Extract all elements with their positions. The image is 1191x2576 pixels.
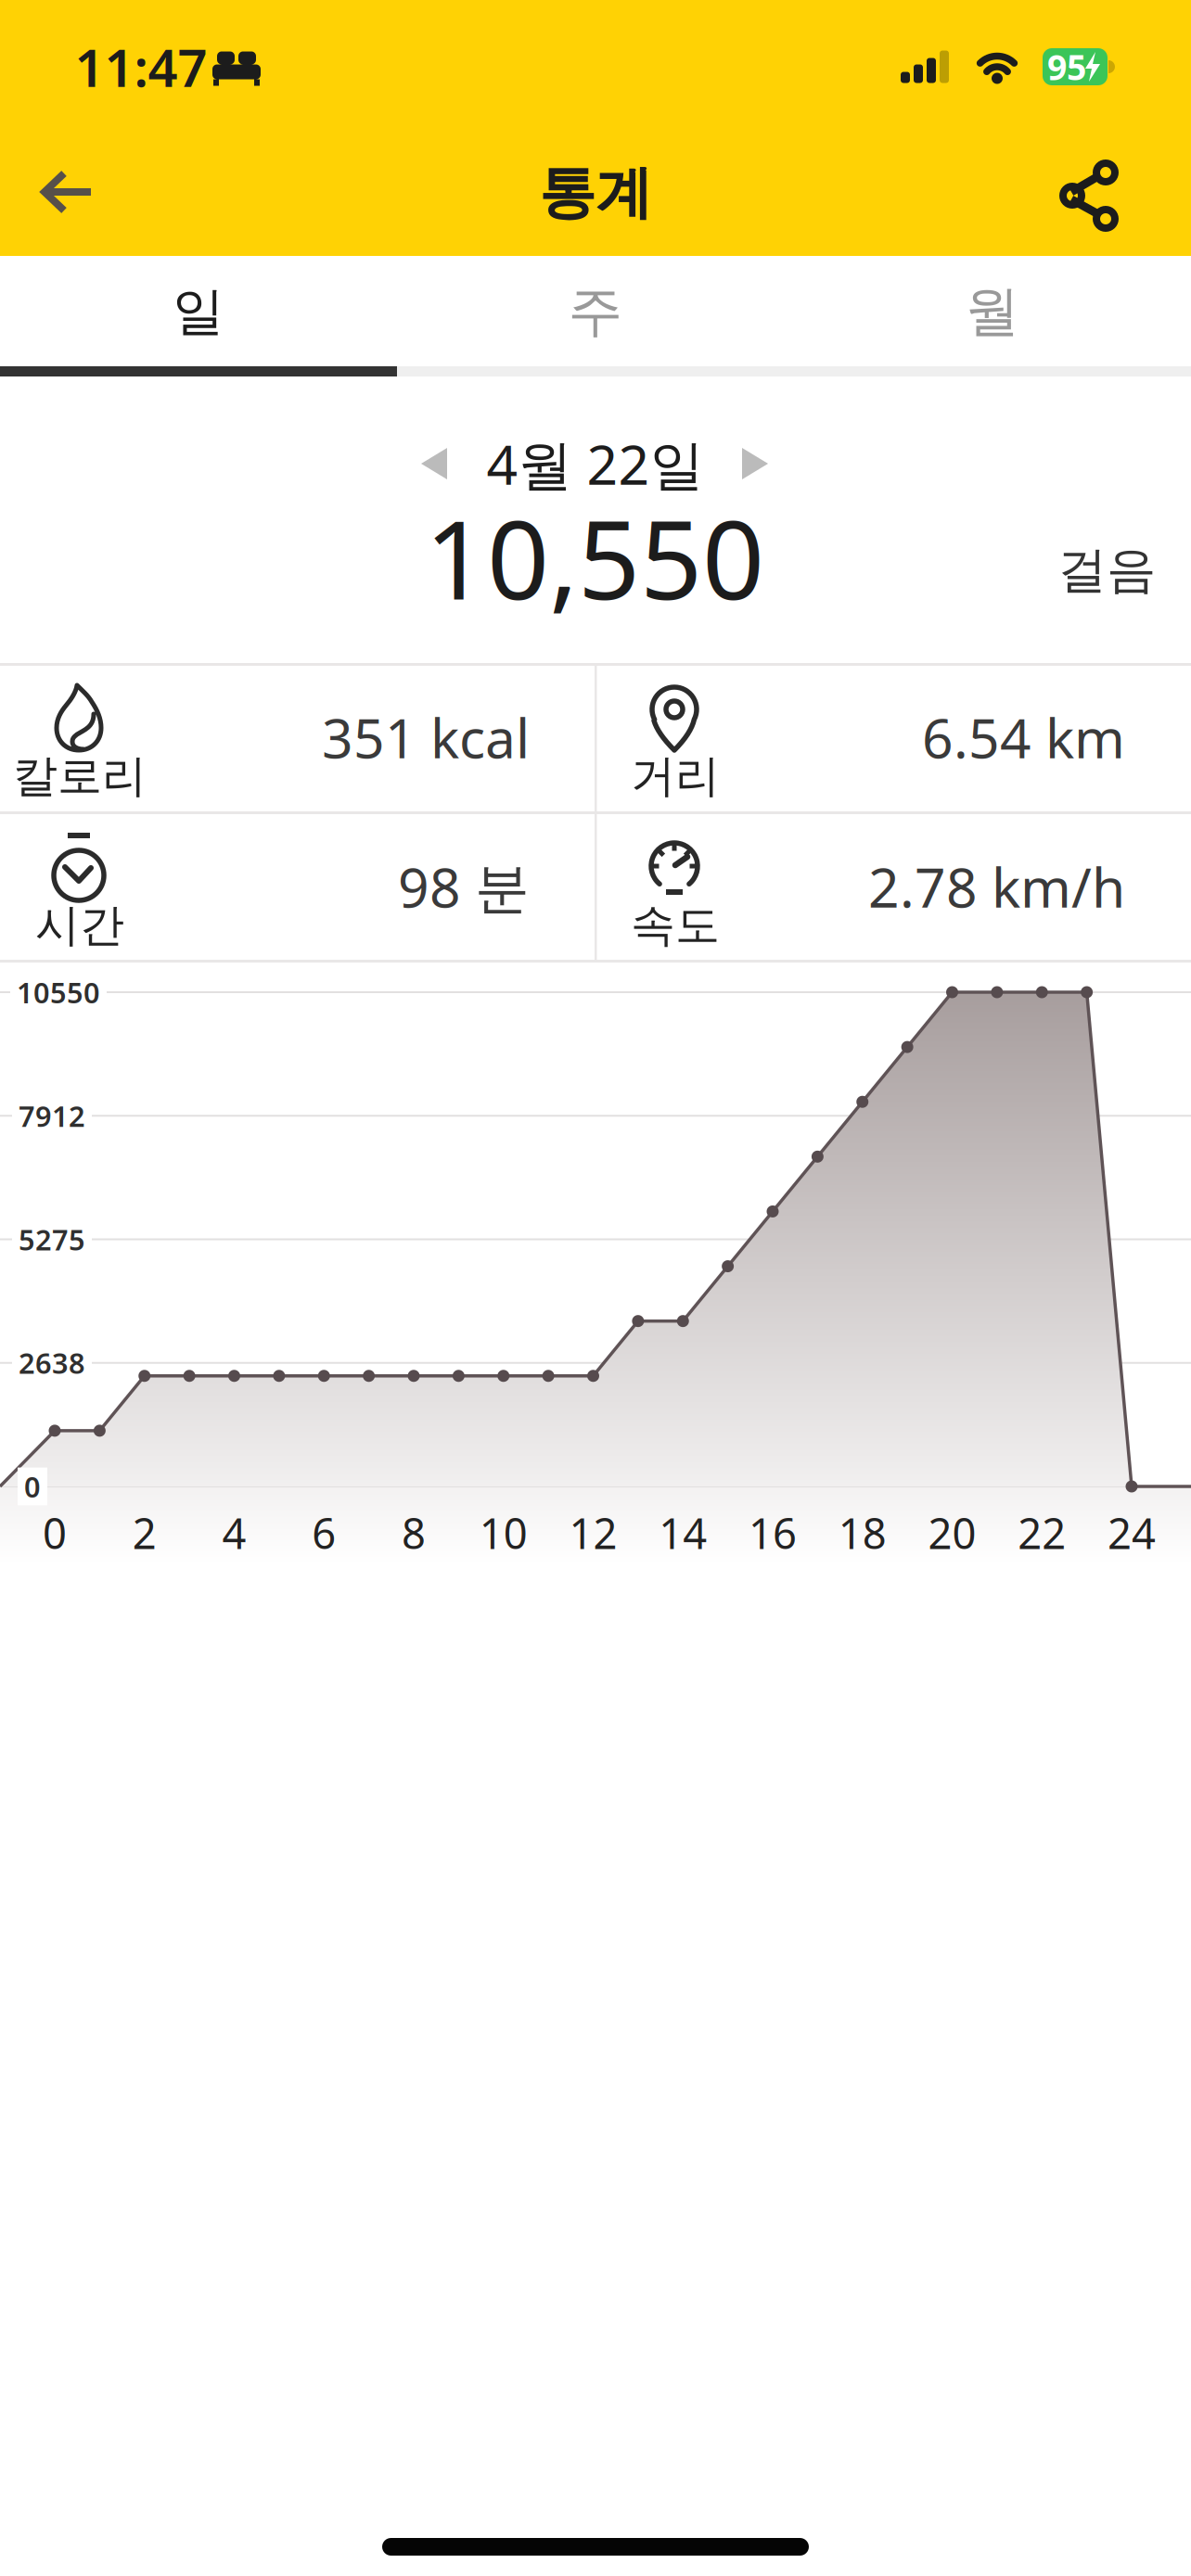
staticText: 4	[222, 1505, 246, 1561]
button[interactable]: Back	[24, 155, 111, 229]
staticText: 18	[838, 1505, 887, 1561]
staticText: 10	[479, 1505, 528, 1561]
staticText: 10,550	[425, 485, 764, 630]
staticText: 걸음	[1057, 540, 1156, 601]
staticText: 24	[1108, 1505, 1156, 1561]
staticText: 5275	[19, 1220, 85, 1258]
button[interactable]: 월	[794, 256, 1191, 367]
staticText: 0	[24, 1468, 41, 1505]
staticText: 95	[1047, 44, 1086, 90]
staticText: 10550	[17, 973, 100, 1011]
staticText: 2.78 km/h	[868, 850, 1125, 923]
staticText: 6.54 km	[922, 701, 1125, 773]
staticText: 4월 22일	[487, 427, 704, 500]
staticText: 98 분	[398, 850, 530, 923]
staticText: 2638	[19, 1344, 85, 1382]
staticText: 거리	[631, 749, 720, 803]
staticText: 속도	[631, 898, 720, 953]
staticText: 20	[928, 1505, 976, 1561]
staticText: 일	[173, 280, 224, 343]
staticText: 월	[965, 278, 1020, 345]
staticText: 7912	[19, 1097, 85, 1135]
button[interactable]: 주	[397, 256, 794, 367]
staticText: 16	[749, 1505, 797, 1561]
staticText: 칼로리	[13, 749, 147, 803]
staticText: 351 kcal	[322, 701, 530, 773]
staticText: 2	[132, 1505, 157, 1561]
staticText: 6	[312, 1505, 336, 1561]
staticText: 주	[568, 278, 623, 345]
button[interactable]: Next day	[727, 433, 783, 494]
staticText: 통계	[539, 158, 652, 228]
staticText: 22	[1018, 1505, 1066, 1561]
staticText: 시간	[35, 898, 124, 953]
staticText: 0	[43, 1505, 67, 1561]
button[interactable]: Share	[1048, 136, 1133, 248]
staticText: 12	[569, 1505, 617, 1561]
button[interactable]: 일	[0, 256, 397, 367]
staticText: 14	[659, 1505, 707, 1561]
staticText: 11:47	[75, 32, 207, 101]
button[interactable]: Previous day	[406, 433, 462, 494]
staticText: 8	[402, 1505, 426, 1561]
